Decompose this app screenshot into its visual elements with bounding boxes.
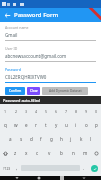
staticText: 2 bbox=[15, 109, 18, 114]
button[interactable]: i bbox=[71, 118, 81, 132]
staticText: . bbox=[83, 165, 85, 171]
staticText: User ID bbox=[5, 46, 18, 51]
button[interactable]: 5 bbox=[41, 104, 51, 118]
staticText: t bbox=[45, 122, 47, 128]
button[interactable]: w bbox=[11, 118, 21, 132]
staticText: r bbox=[35, 122, 37, 128]
button[interactable]: s bbox=[16, 132, 26, 146]
button[interactable]: e bbox=[21, 118, 31, 132]
button[interactable]: . bbox=[80, 160, 88, 176]
staticText: v bbox=[48, 150, 51, 156]
button[interactable]: k bbox=[76, 132, 86, 146]
button[interactable]: p bbox=[91, 118, 101, 132]
staticText: l bbox=[90, 136, 92, 142]
staticText: n bbox=[72, 150, 75, 156]
button[interactable]: l bbox=[86, 132, 96, 146]
staticText: 3 bbox=[25, 109, 28, 114]
button[interactable]: 7 bbox=[61, 104, 71, 118]
staticText: b bbox=[60, 150, 63, 156]
button[interactable]: Confirm bbox=[5, 87, 25, 95]
button[interactable]: , bbox=[13, 160, 21, 176]
button[interactable]: Password bbox=[5, 67, 96, 83]
staticText: d bbox=[30, 136, 33, 142]
button[interactable]: q bbox=[0, 118, 11, 132]
staticText: C0L2ERQHRIXTVW0 bbox=[5, 74, 47, 80]
staticText: 7 bbox=[65, 109, 68, 114]
staticText: c bbox=[36, 150, 39, 156]
button[interactable]: d bbox=[26, 132, 36, 146]
button[interactable]: n bbox=[67, 146, 79, 160]
button[interactable]: 9 bbox=[81, 104, 91, 118]
button[interactable]: b bbox=[55, 146, 67, 160]
staticText: z bbox=[14, 150, 17, 156]
staticText: j bbox=[70, 136, 72, 142]
staticText: w bbox=[14, 122, 18, 128]
staticText: Password bbox=[5, 67, 21, 72]
button[interactable]: o bbox=[81, 118, 91, 132]
button[interactable]: z bbox=[10, 146, 21, 160]
staticText: a bbox=[9, 136, 12, 142]
staticText: , bbox=[16, 165, 18, 171]
staticText: Account name bbox=[5, 25, 29, 30]
staticText: Confirm bbox=[9, 89, 22, 93]
button[interactable]: r bbox=[31, 118, 41, 132]
button[interactable]: User ID bbox=[5, 46, 96, 62]
button[interactable]: Shift bbox=[0, 146, 10, 160]
button[interactable]: Account name bbox=[5, 25, 96, 41]
button[interactable]: Home bbox=[33, 176, 45, 180]
button[interactable]: 1 bbox=[0, 104, 11, 118]
button[interactable]: u bbox=[61, 118, 71, 132]
staticText: i bbox=[75, 122, 77, 128]
staticText: g bbox=[50, 136, 53, 142]
button[interactable]: ?123 bbox=[0, 160, 13, 176]
staticText: ?123 bbox=[3, 166, 11, 171]
button[interactable]: 4 bbox=[31, 104, 41, 118]
button[interactable]: Back bbox=[0, 8, 14, 22]
button[interactable]: 6 bbox=[51, 104, 61, 118]
staticText: 8 bbox=[75, 109, 78, 114]
staticText: p bbox=[95, 122, 98, 128]
button[interactable]: 3 bbox=[21, 104, 31, 118]
staticText: 9 bbox=[85, 109, 88, 114]
button[interactable]: Recents bbox=[56, 176, 68, 180]
staticText: f bbox=[40, 136, 42, 142]
staticText: Gmail bbox=[5, 32, 18, 38]
staticText: k bbox=[80, 136, 83, 142]
staticText: Clear bbox=[30, 89, 38, 93]
button[interactable]: Back bbox=[11, 176, 23, 180]
button[interactable]: Backspace bbox=[91, 146, 101, 160]
button[interactable]: x bbox=[21, 146, 32, 160]
button[interactable]: Add Dynamic Dataset bbox=[42, 87, 88, 95]
button[interactable]: h bbox=[56, 132, 66, 146]
staticText: 5 bbox=[45, 109, 48, 114]
staticText: Password auto-filled bbox=[3, 98, 40, 103]
button[interactable]: Hide keyboard bbox=[78, 176, 90, 180]
staticText: u bbox=[65, 122, 68, 128]
staticText: y bbox=[55, 122, 58, 128]
button[interactable]: v bbox=[43, 146, 55, 160]
button[interactable]: y bbox=[51, 118, 61, 132]
staticText: 1 bbox=[4, 109, 7, 114]
button[interactable]: c bbox=[32, 146, 43, 160]
button[interactable]: g bbox=[46, 132, 56, 146]
staticText: x bbox=[25, 150, 28, 156]
staticText: Password Form bbox=[14, 11, 59, 19]
button[interactable]: j bbox=[66, 132, 76, 146]
button[interactable]: t bbox=[41, 118, 51, 132]
staticText: q bbox=[4, 122, 7, 128]
button[interactable]: Enter bbox=[88, 160, 101, 176]
button[interactable]: a bbox=[5, 132, 16, 146]
staticText: s bbox=[20, 136, 23, 142]
staticText: m bbox=[83, 150, 88, 156]
button[interactable]: 2 bbox=[11, 104, 21, 118]
button[interactable]: m bbox=[79, 146, 91, 160]
staticText: abcnewsaccount@gmail.com bbox=[5, 53, 67, 59]
button[interactable]: 0 bbox=[91, 104, 101, 118]
button[interactable]: Clear bbox=[27, 87, 40, 95]
button[interactable]: 8 bbox=[71, 104, 81, 118]
button[interactable]: f bbox=[36, 132, 46, 146]
staticText: e bbox=[25, 122, 28, 128]
staticText: 6 bbox=[55, 109, 58, 114]
staticText: 4 bbox=[35, 109, 38, 114]
